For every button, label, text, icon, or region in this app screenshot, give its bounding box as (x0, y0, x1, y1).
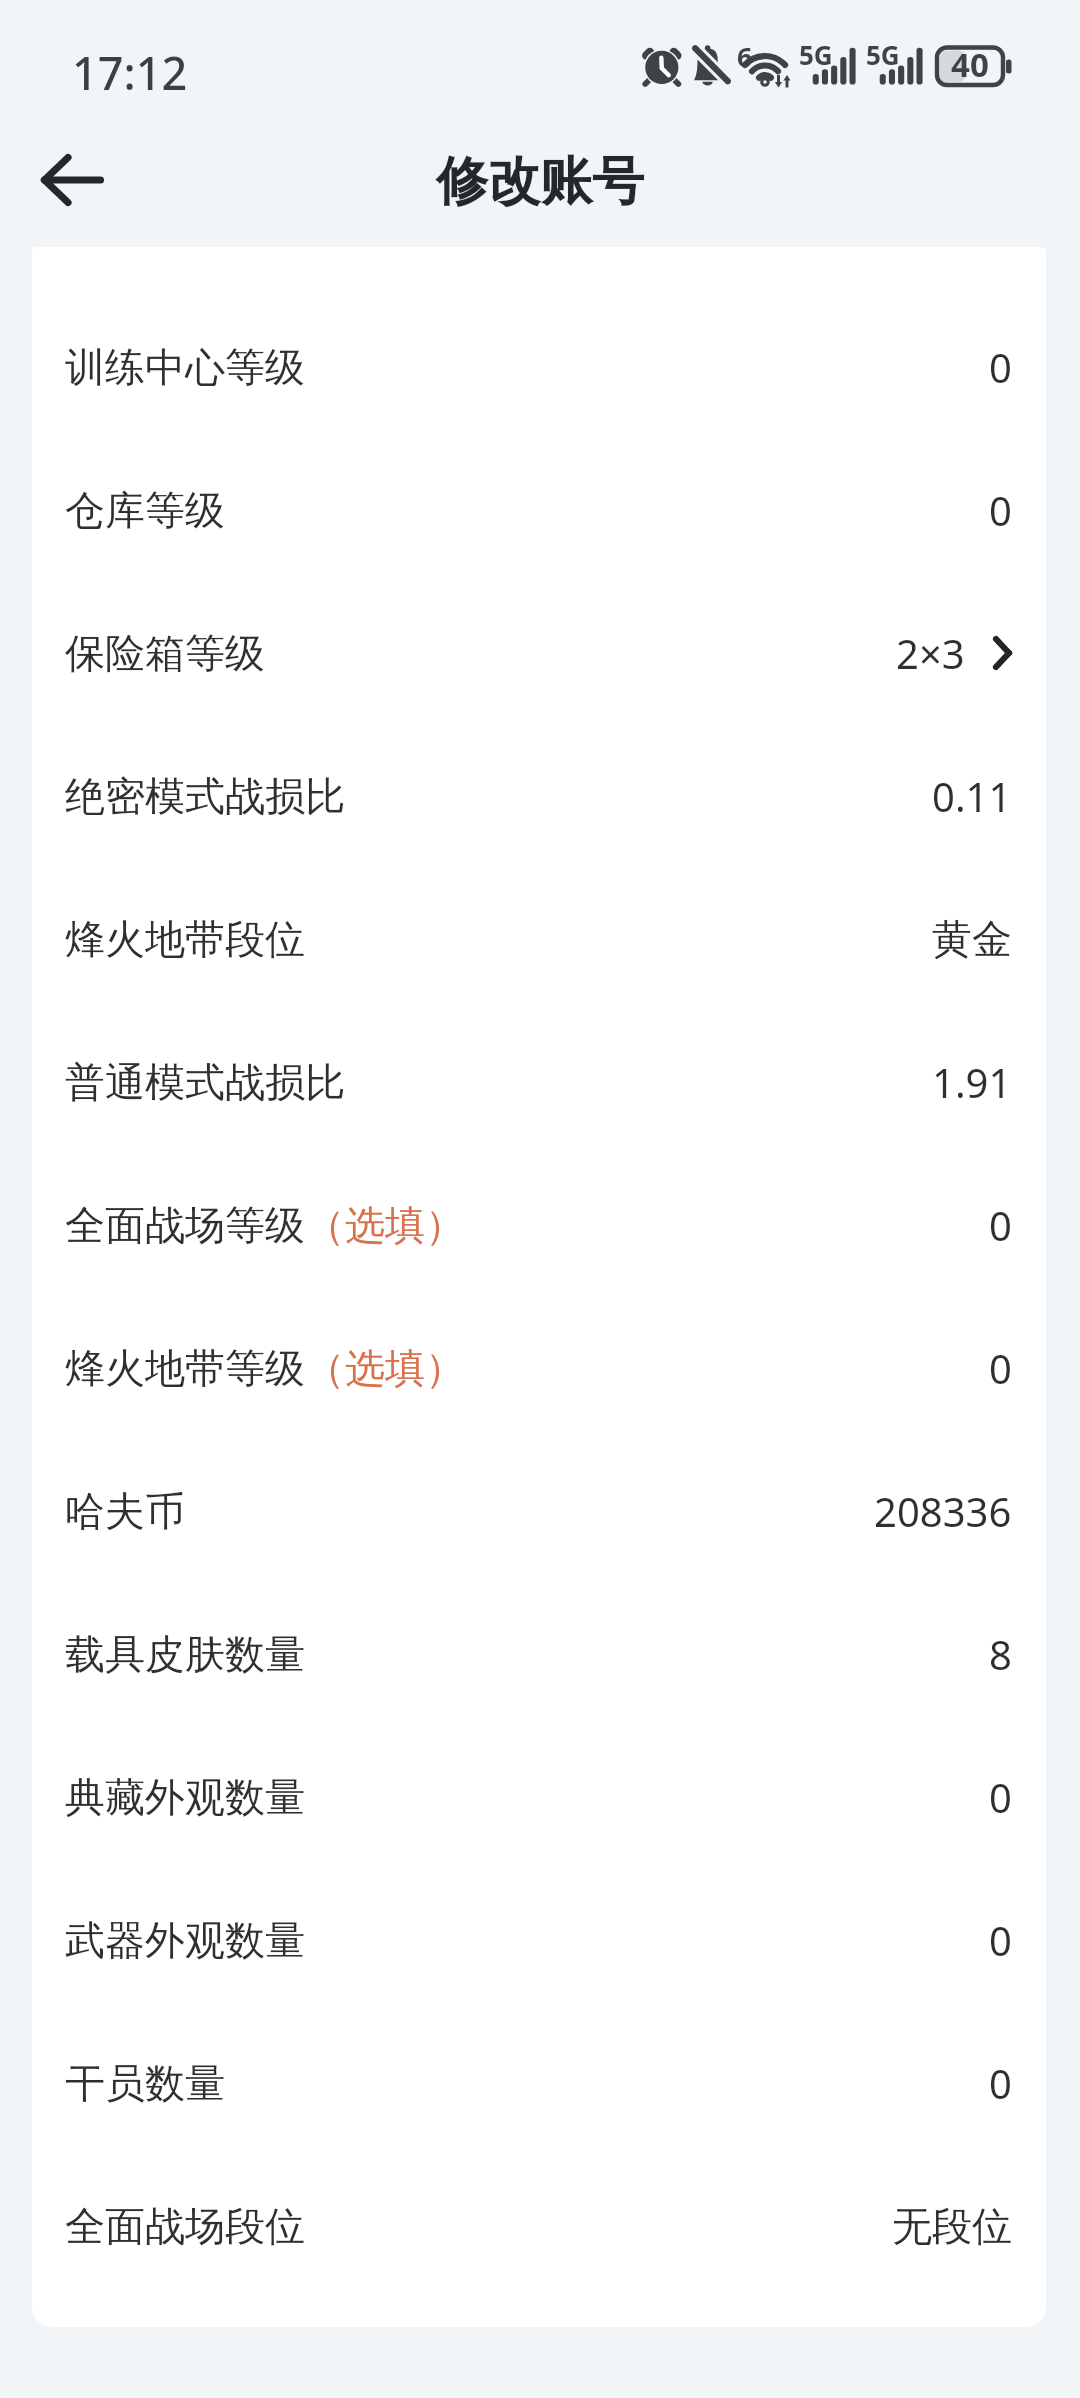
button[interactable]: 干员数量 (32, 2011, 1046, 2154)
staticText: 0 (989, 2056, 1012, 2110)
button[interactable]: 武器外观数量 (32, 1868, 1046, 2011)
staticText: 仓库等级 (65, 485, 225, 535)
staticText: 0 (989, 340, 1012, 394)
staticText: 0 (989, 1198, 1012, 1252)
staticText: 干员数量 (65, 2058, 225, 2108)
staticText: 全面战场等级（选填） (65, 1200, 465, 1250)
staticText: 武器外观数量 (65, 1915, 305, 1965)
button[interactable]: 载具皮肤数量 (32, 1582, 1046, 1725)
button[interactable]: 全面战场段位 (32, 2154, 1046, 2297)
staticText: 0 (989, 1913, 1012, 1967)
staticText: 17:12 (72, 42, 188, 103)
staticText: 保险箱等级 (65, 628, 265, 678)
button[interactable]: 典藏外观数量 (32, 1725, 1046, 1868)
staticText: 2×3 (896, 626, 965, 680)
button[interactable]: 仓库等级 (32, 438, 1046, 581)
staticText: 哈夫币 (65, 1486, 185, 1536)
staticText: 0 (989, 483, 1012, 537)
staticText: 全面战场段位 (65, 2201, 305, 2251)
staticText: 6 (737, 38, 753, 75)
button[interactable]: 保险箱等级 (32, 581, 1046, 724)
button[interactable]: 返回 (24, 132, 120, 228)
staticText: 1.91 (932, 1055, 1012, 1109)
staticText: 典藏外观数量 (65, 1772, 305, 1822)
staticText: 修改账号 (436, 149, 644, 215)
staticText: 烽火地带等级（选填） (65, 1343, 465, 1393)
button[interactable]: 全面战场等级（选填） (32, 1153, 1046, 1296)
staticText: 黄金 (932, 914, 1012, 964)
button[interactable]: 哈夫币 (32, 1439, 1046, 1582)
staticText: 8 (989, 1627, 1012, 1681)
button[interactable]: 烽火地带段位 (32, 867, 1046, 1010)
button[interactable]: 绝密模式战损比 (32, 724, 1046, 867)
staticText: 208336 (874, 1484, 1012, 1538)
staticText: 40 (951, 42, 989, 87)
staticText: 烽火地带段位 (65, 914, 305, 964)
staticText: 0.11 (932, 769, 1012, 823)
staticText: 训练中心等级 (65, 342, 305, 392)
staticText: 绝密模式战损比 (65, 771, 345, 821)
staticText: 5G (866, 37, 900, 72)
staticText: 无段位 (892, 2201, 1012, 2251)
staticText: 载具皮肤数量 (65, 1629, 305, 1679)
button[interactable]: 烽火地带等级（选填） (32, 1296, 1046, 1439)
button[interactable]: 普通模式战损比 (32, 1010, 1046, 1153)
staticText: 5G (799, 37, 833, 72)
staticText: 普通模式战损比 (65, 1057, 345, 1107)
staticText: 0 (989, 1770, 1012, 1824)
button[interactable]: 训练中心等级 (32, 295, 1046, 438)
staticText: 0 (989, 1341, 1012, 1395)
